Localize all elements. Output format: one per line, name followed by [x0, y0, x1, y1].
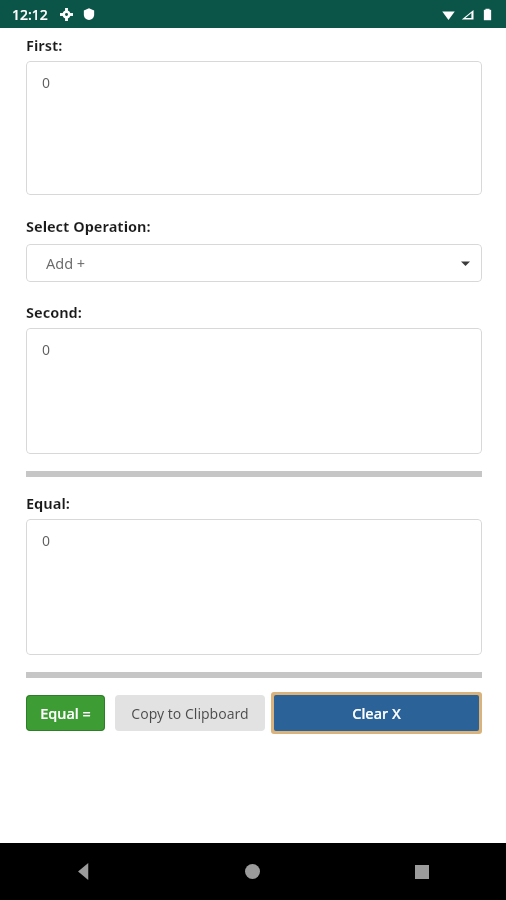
- button[interactable]: Add +: [26, 244, 482, 282]
- button[interactable]: Clear X: [271, 692, 482, 734]
- button[interactable]: Home: [168, 843, 337, 900]
- button[interactable]: Recent apps: [337, 843, 506, 900]
- staticText: 0: [42, 531, 51, 550]
- staticText: Second:: [26, 302, 82, 322]
- button[interactable]: 0: [26, 328, 482, 454]
- staticText: Equal:: [26, 493, 70, 513]
- staticText: Clear X: [352, 703, 401, 723]
- staticText: Add +: [46, 253, 86, 273]
- staticText: Equal =: [40, 703, 91, 723]
- button[interactable]: Equal =: [26, 695, 105, 731]
- staticText: 0: [42, 73, 51, 92]
- staticText: Copy to Clipboard: [131, 704, 249, 723]
- button[interactable]: 0: [26, 61, 482, 195]
- staticText: First:: [26, 35, 63, 55]
- staticText: 12:12: [12, 5, 48, 24]
- staticText: 0: [42, 340, 51, 359]
- button[interactable]: Copy to Clipboard: [115, 695, 265, 731]
- button[interactable]: Back: [0, 843, 168, 900]
- button[interactable]: 0: [26, 519, 482, 655]
- staticText: Select Operation:: [26, 216, 151, 236]
